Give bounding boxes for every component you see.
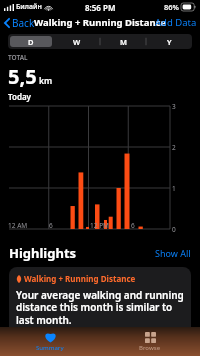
staticText: D	[28, 37, 34, 47]
button[interactable]: W	[56, 36, 98, 47]
staticText: 0	[172, 225, 176, 234]
button[interactable]: Summary	[0, 327, 100, 356]
staticText: 8:56 PM	[85, 2, 116, 13]
staticText: 12 AM	[8, 221, 28, 230]
staticText: M	[120, 37, 127, 47]
staticText: Show All	[155, 247, 191, 259]
staticText: Walking + Running Distance	[24, 273, 136, 284]
staticText: 1	[172, 184, 176, 193]
staticText: Add Data	[155, 16, 197, 29]
button[interactable]: Show All	[155, 247, 191, 259]
staticText: W	[73, 37, 81, 47]
button[interactable]: D	[10, 36, 52, 47]
staticText: 2	[172, 143, 176, 152]
staticText: 6	[131, 221, 135, 230]
staticText: Your average walking and running distanc…	[16, 288, 184, 327]
staticText: Highlights	[9, 244, 77, 262]
staticText: 86%	[164, 2, 179, 12]
button[interactable]: Back	[3, 16, 36, 30]
staticText: 12 PM	[90, 221, 109, 230]
staticText: km	[39, 75, 53, 87]
staticText: 3	[172, 102, 176, 111]
staticText: 5,5	[8, 63, 37, 90]
staticText: Browse	[139, 344, 161, 352]
staticText: Y	[167, 37, 172, 47]
staticText: 6	[49, 221, 53, 230]
staticText: Билайн	[16, 2, 42, 12]
staticText: Walking + Running Distance	[34, 16, 167, 29]
staticText: TOTAL	[8, 53, 28, 62]
staticText: Today	[8, 91, 31, 102]
button[interactable]: Walking + Running Distance	[9, 267, 191, 340]
button[interactable]: Add Data	[155, 16, 200, 29]
button[interactable]: M	[102, 36, 144, 47]
staticText: Back	[12, 16, 35, 30]
button[interactable]: Browse	[100, 327, 200, 356]
button[interactable]: Y	[148, 36, 190, 47]
staticText: Summary	[36, 344, 64, 352]
